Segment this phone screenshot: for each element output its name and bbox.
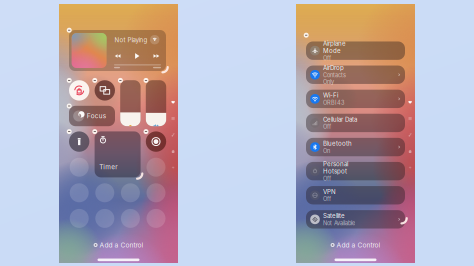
staticText: Not Playing — [114, 36, 147, 44]
staticText: Off — [323, 55, 331, 62]
button[interactable]: Focus — [69, 106, 115, 126]
button[interactable]: Add a Control — [87, 241, 149, 249]
button[interactable]: AirDrop — [306, 65, 405, 84]
button[interactable]: Timer — [95, 131, 141, 177]
staticText: ORBI43 — [323, 99, 344, 106]
staticText: Airplane Mode — [323, 40, 346, 54]
button[interactable]: Rotation Lock — [69, 80, 89, 101]
staticText: Add a Control — [336, 241, 380, 249]
staticText: Not Available — [323, 220, 355, 227]
staticText: Contacts Only — [323, 72, 346, 85]
button[interactable]: Camera — [146, 131, 166, 152]
button[interactable]: Volume — [146, 80, 166, 126]
button[interactable]: VPN — [306, 186, 405, 204]
button[interactable]: Cellular Data — [306, 114, 405, 132]
button[interactable]: Flashlight — [69, 131, 89, 152]
staticText: Satellite — [323, 212, 345, 220]
staticText: Add a Control — [99, 241, 143, 249]
staticText: Off — [323, 123, 331, 130]
button[interactable]: Brightness — [120, 80, 141, 126]
button[interactable]: Satellite — [306, 210, 405, 228]
button[interactable]: Airplane Mode — [306, 41, 405, 60]
button[interactable]: Wi-Fi — [306, 90, 405, 108]
staticText: Bluetooth — [323, 140, 352, 147]
staticText: AirDrop — [323, 64, 344, 72]
button[interactable]: Add a Control — [324, 241, 386, 249]
staticText: Wi-Fi — [323, 92, 338, 99]
button[interactable]: Not Playing — [69, 30, 166, 71]
staticText: Personal Hotspot — [323, 160, 348, 175]
button[interactable]: Screen Mirroring — [95, 80, 115, 101]
staticText: Off — [323, 175, 331, 182]
staticText: VPN — [323, 188, 336, 195]
button[interactable]: Personal Hotspot — [306, 162, 405, 180]
staticText: Timer — [99, 163, 117, 171]
button[interactable]: Bluetooth — [306, 138, 405, 156]
staticText: On — [323, 147, 330, 154]
staticText: Off — [323, 196, 331, 202]
staticText: Cellular Data — [323, 116, 357, 123]
staticText: Focus — [87, 112, 106, 120]
